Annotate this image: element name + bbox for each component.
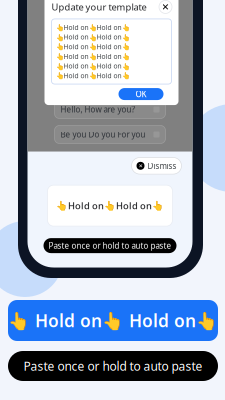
staticText: 👆Hold on👆Hold on👆 [55,71,129,80]
staticText: Translate to English [60,54,133,65]
button[interactable]: OK [118,88,163,100]
staticText: 👆Hold on👆Hold on👆 [55,62,129,70]
staticText: Be you Do you For you [60,129,145,140]
staticText: Paste once or hold to auto paste [48,240,171,251]
staticText: Make it shorter [60,79,117,90]
button[interactable]: ✕ [131,157,181,174]
staticText: 👆Hold on👆Hold on👆 [55,23,129,32]
staticText: 👆Hold on👆Hold on👆 [55,52,129,61]
staticText: Paste once or hold to auto paste [23,358,202,374]
staticText: OK [135,89,146,99]
staticText: ✕ [161,2,169,12]
staticText: Hello, How are you? [60,104,134,115]
staticText: Dismiss [147,160,176,171]
staticText: Good morning [60,29,115,40]
staticText: Update your template [51,1,146,13]
button[interactable]: Paste once or hold to auto paste [8,351,218,381]
staticText: 👆 Hold on👆 Hold on👆 [8,309,218,332]
button[interactable]: 👆 Hold on👆 Hold on👆 [8,300,218,341]
staticText: 👆Hold on👆Hold on👆 [56,199,164,212]
button[interactable]: Paste once or hold to auto paste [43,238,176,253]
staticText: ✕ [138,163,142,169]
staticText: 👆Hold on👆Hold on👆 [55,33,129,41]
button[interactable]: Close [158,0,172,14]
staticText: 👆Hold on👆Hold on👆 [55,42,129,51]
